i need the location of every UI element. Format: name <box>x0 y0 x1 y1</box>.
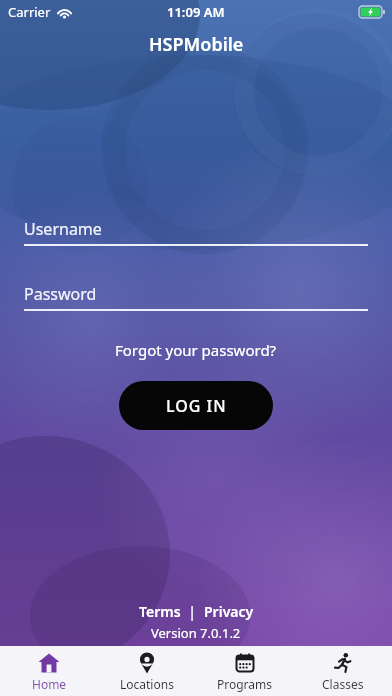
staticText: Username <box>24 218 102 240</box>
staticText: Version 7.0.1.2 <box>151 624 241 642</box>
button[interactable]: Terms <box>139 602 181 621</box>
button[interactable]: Username <box>24 218 368 246</box>
button[interactable]: Classes <box>294 646 392 696</box>
button[interactable]: Password <box>24 283 368 311</box>
staticText: Home <box>32 676 67 692</box>
button[interactable]: Home <box>0 646 98 696</box>
staticText: Carrier <box>8 3 51 21</box>
staticText: Programs <box>217 676 273 692</box>
button[interactable]: Privacy <box>204 602 254 621</box>
button[interactable]: Forgot your password? <box>115 340 277 360</box>
staticText: Classes <box>322 676 364 692</box>
staticText: Locations <box>120 676 174 692</box>
staticText: HSPMobile <box>149 32 244 57</box>
button[interactable]: Programs <box>196 646 294 696</box>
staticText: Password <box>24 283 97 305</box>
staticText: LOG IN <box>166 395 227 417</box>
button[interactable]: Locations <box>98 646 196 696</box>
staticText: 11:09 AM <box>167 3 225 21</box>
button[interactable]: LOG IN <box>119 381 273 430</box>
staticText: | <box>181 602 204 621</box>
